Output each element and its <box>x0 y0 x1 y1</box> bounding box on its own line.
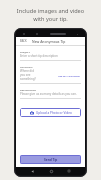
staticText: LOCATION <box>20 65 33 68</box>
staticText: Upload a Photo or Video <box>36 111 72 115</box>
staticText: New Anonymous Tip <box>32 39 66 44</box>
button[interactable]: BACK <box>19 38 28 44</box>
staticText: DESCRIPTION <box>20 88 37 91</box>
button[interactable]: USE MY LOCATION <box>57 73 81 78</box>
staticText: BACK <box>20 39 27 43</box>
staticText: USE MY LOCATION <box>58 74 80 77</box>
button[interactable]: Back <box>29 168 35 174</box>
staticText: Send Tip <box>44 158 58 162</box>
button[interactable]: Recent apps <box>66 168 72 174</box>
staticText: Where did you see something? <box>20 69 38 81</box>
staticText: Enter a short tip description <box>20 54 58 58</box>
button[interactable]: Upload a Photo or Video <box>20 108 81 117</box>
staticText: Please give us as many details as you ca… <box>20 92 77 96</box>
button[interactable]: Home <box>48 168 54 174</box>
staticText: SUBJECT <box>20 50 30 53</box>
staticText: Include images and video with your tip. <box>0 7 101 22</box>
button[interactable]: Send Tip <box>20 155 81 164</box>
